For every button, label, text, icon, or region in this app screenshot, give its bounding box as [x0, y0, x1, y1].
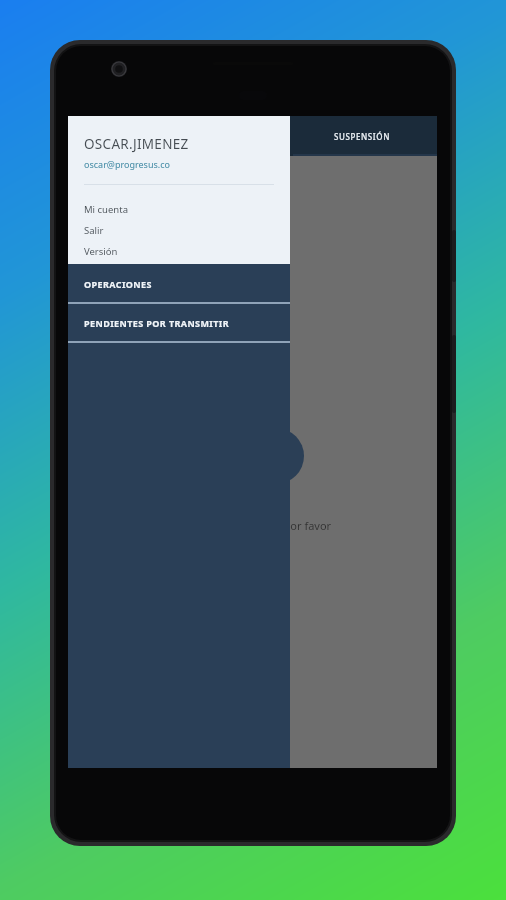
staticText: SUSPENSIÓN [334, 131, 390, 142]
button[interactable]: SUSPENSIÓN [287, 116, 437, 156]
staticText: Mi cuenta [84, 203, 128, 216]
staticText: Versión [84, 245, 118, 258]
staticText: oscar@progresus.co [84, 158, 170, 170]
button[interactable]: OPERACIONES [68, 265, 290, 302]
staticText: PENDIENTES POR TRANSMITIR [84, 317, 230, 329]
staticText: OSCAR.JIMENEZ [84, 135, 189, 153]
staticText: Salir [84, 224, 104, 237]
button[interactable]: OSCAR.JIMENEZ [68, 116, 290, 264]
button[interactable]: Salir [68, 220, 290, 241]
staticText: Reconexión. Por favor [218, 518, 332, 533]
button[interactable]: PENDIENTES POR TRANSMITIR [68, 304, 290, 341]
button[interactable]: Mi cuenta [68, 199, 290, 220]
staticText: OPERACIONES [84, 278, 152, 290]
button[interactable]: Versión [68, 241, 290, 262]
